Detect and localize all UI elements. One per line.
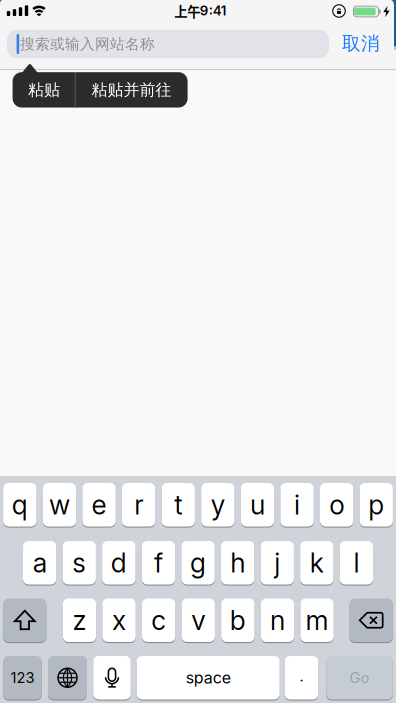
button[interactable]: u bbox=[241, 482, 274, 527]
staticText: g bbox=[190, 547, 206, 579]
button[interactable]: j bbox=[261, 540, 294, 585]
button[interactable]: c bbox=[142, 597, 175, 643]
button[interactable]: . bbox=[285, 655, 318, 700]
button[interactable]: w bbox=[43, 482, 76, 527]
staticText: n bbox=[270, 604, 285, 636]
button[interactable]: e bbox=[82, 482, 116, 527]
staticText: z bbox=[72, 604, 86, 636]
staticText: x bbox=[112, 604, 126, 636]
button[interactable]: Shift bbox=[3, 597, 46, 643]
staticText: c bbox=[151, 604, 166, 636]
staticText: Go bbox=[349, 669, 369, 686]
staticText: s bbox=[72, 547, 86, 579]
staticText: 123 bbox=[10, 669, 34, 686]
staticText: l bbox=[353, 547, 359, 579]
staticText: o bbox=[329, 489, 344, 521]
staticText: d bbox=[111, 547, 127, 579]
staticText: 粘贴 bbox=[28, 80, 60, 100]
button[interactable]: z bbox=[63, 597, 96, 643]
button[interactable]: Dictation bbox=[93, 655, 131, 700]
staticText: p bbox=[368, 489, 384, 521]
staticText: a bbox=[33, 547, 47, 579]
staticText: u bbox=[250, 489, 265, 521]
button[interactable]: f bbox=[142, 540, 175, 585]
button[interactable]: Delete bbox=[350, 597, 393, 643]
button[interactable]: g bbox=[181, 540, 215, 585]
button[interactable]: v bbox=[182, 597, 215, 643]
button[interactable]: k bbox=[300, 540, 333, 585]
button[interactable]: q bbox=[3, 482, 36, 527]
button[interactable]: i bbox=[280, 482, 314, 527]
button[interactable]: p bbox=[360, 482, 393, 527]
button[interactable]: d bbox=[102, 540, 135, 585]
button[interactable]: b bbox=[221, 597, 254, 643]
button[interactable]: 粘贴 bbox=[28, 80, 60, 100]
staticText: r bbox=[134, 489, 143, 521]
staticText: h bbox=[230, 547, 245, 579]
button[interactable]: Next keyboard bbox=[48, 655, 87, 700]
staticText: 搜索或输入网站名称 bbox=[20, 35, 155, 53]
button[interactable]: l bbox=[340, 540, 373, 585]
staticText: w bbox=[49, 489, 70, 521]
staticText: e bbox=[92, 489, 107, 521]
button[interactable]: space bbox=[137, 655, 280, 700]
button[interactable]: x bbox=[102, 597, 136, 643]
staticText: y bbox=[211, 489, 225, 521]
button[interactable]: t bbox=[162, 482, 195, 527]
staticText: m bbox=[306, 604, 329, 636]
button[interactable]: s bbox=[63, 540, 96, 585]
staticText: v bbox=[191, 604, 205, 636]
button[interactable]: 123 bbox=[3, 655, 42, 700]
staticText: . bbox=[299, 668, 303, 685]
staticText: t bbox=[174, 489, 182, 521]
button[interactable]: r bbox=[122, 482, 155, 527]
button[interactable]: m bbox=[300, 597, 334, 643]
staticText: q bbox=[12, 489, 28, 521]
staticText: 取消 bbox=[342, 32, 380, 55]
button[interactable]: 搜索或输入网站名称 bbox=[7, 30, 329, 58]
button[interactable]: n bbox=[261, 597, 294, 643]
staticText: f bbox=[154, 547, 163, 579]
button[interactable]: a bbox=[23, 540, 56, 585]
button[interactable]: o bbox=[320, 482, 353, 527]
staticText: b bbox=[230, 604, 246, 636]
staticText: i bbox=[294, 489, 300, 521]
staticText: 9:41 bbox=[200, 3, 227, 18]
staticText: space bbox=[186, 668, 231, 687]
button[interactable]: y bbox=[201, 482, 234, 527]
staticText: 上午 bbox=[174, 1, 200, 20]
button[interactable]: h bbox=[221, 540, 254, 585]
button[interactable]: Go bbox=[326, 655, 393, 700]
staticText: k bbox=[310, 547, 324, 579]
staticText: 粘贴并前往 bbox=[91, 80, 171, 100]
button[interactable]: 粘贴并前往 bbox=[91, 80, 171, 100]
staticText: j bbox=[274, 547, 280, 579]
button[interactable]: 取消 bbox=[342, 32, 380, 55]
